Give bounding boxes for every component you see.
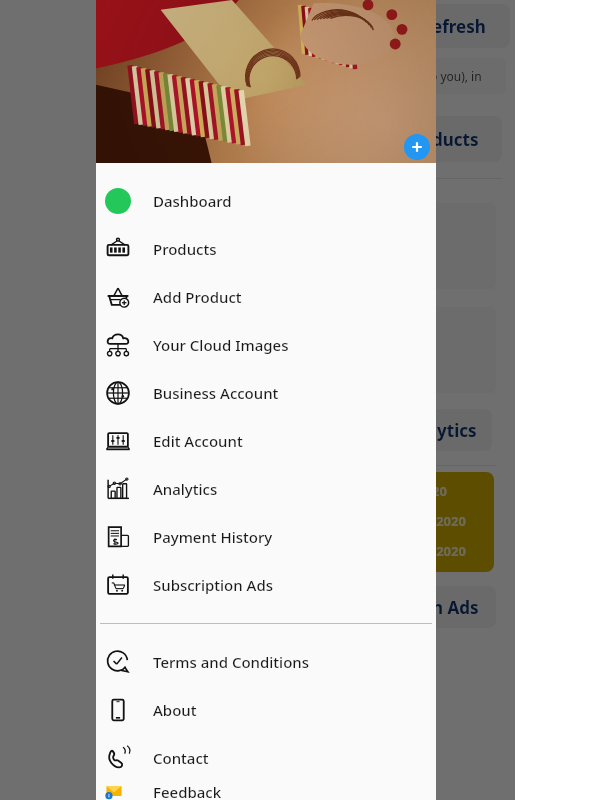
- staticText: lytics: [432, 419, 477, 442]
- button[interactable]: Dashboard: [96, 177, 436, 225]
- staticText: o you), in: [430, 68, 482, 84]
- button[interactable]: Products: [96, 225, 436, 273]
- button[interactable]: About: [96, 686, 436, 734]
- staticText: Payment History: [153, 527, 273, 547]
- staticText: Dashboard: [153, 191, 232, 211]
- staticText: Feedback: [153, 782, 222, 800]
- staticText: n Ads: [432, 596, 479, 619]
- button[interactable]: Terms and Conditions: [96, 638, 436, 686]
- button[interactable]: efresh: [430, 4, 510, 48]
- staticText: efresh: [432, 15, 486, 38]
- staticText: Contact: [153, 748, 209, 768]
- staticText: Edit Account: [153, 431, 243, 451]
- button[interactable]: Your Cloud Images: [96, 321, 436, 369]
- button[interactable]: Subscription Ads: [96, 561, 436, 609]
- button[interactable]: Add Product: [96, 273, 436, 321]
- staticText: Products: [153, 239, 217, 259]
- staticText: Business Account: [153, 383, 279, 403]
- button[interactable]: Edit Account: [96, 417, 436, 465]
- button[interactable]: Feedback: [96, 782, 436, 800]
- button[interactable]: Add: [404, 134, 430, 160]
- button[interactable]: Business Account: [96, 369, 436, 417]
- button[interactable]: Payment History: [96, 513, 436, 561]
- button[interactable]: Analytics: [96, 465, 436, 513]
- button[interactable]: Contact: [96, 734, 436, 782]
- staticText: -2020: [432, 512, 466, 530]
- staticText: Your Cloud Images: [153, 335, 289, 355]
- staticText: 20: [432, 482, 447, 500]
- staticText: Analytics: [153, 479, 218, 499]
- button[interactable]: n Ads: [430, 586, 496, 628]
- staticText: Terms and Conditions: [153, 652, 310, 672]
- button[interactable]: ducts: [430, 116, 502, 162]
- staticText: -2020: [432, 542, 466, 560]
- staticText: Add Product: [153, 287, 242, 307]
- button[interactable]: Close navigation drawer: [0, 0, 515, 800]
- button[interactable]: lytics: [430, 409, 492, 451]
- staticText: Subscription Ads: [153, 575, 273, 595]
- staticText: ducts: [432, 128, 479, 151]
- staticText: About: [153, 700, 197, 720]
